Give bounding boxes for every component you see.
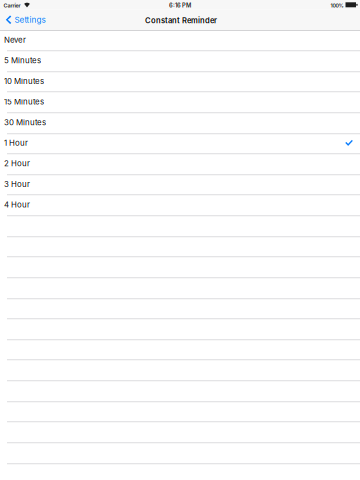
button[interactable]: 30 Minutes — [0, 112, 360, 133]
button[interactable]: Settings — [0, 9, 52, 30]
button[interactable]: 2 Hour — [0, 153, 360, 174]
staticText: Settings — [15, 15, 46, 25]
staticText: 2 Hour — [4, 159, 30, 168]
staticText: 15 Minutes — [4, 97, 44, 106]
staticText: Never — [4, 35, 26, 44]
button[interactable]: 15 Minutes — [0, 91, 360, 112]
button[interactable]: 4 Hour — [0, 194, 360, 215]
staticText: 1 Hour — [4, 138, 28, 148]
staticText: 3 Hour — [4, 179, 30, 189]
button[interactable]: Never — [0, 29, 360, 50]
staticText: 4 Hour — [4, 200, 30, 209]
staticText: 100% — [330, 2, 343, 9]
staticText: 6:16 PM — [169, 2, 191, 9]
staticText: Carrier — [4, 2, 21, 9]
button[interactable]: 10 Minutes — [0, 71, 360, 91]
staticText: 30 Minutes — [4, 117, 46, 127]
button[interactable]: 3 Hour — [0, 174, 360, 194]
staticText: 10 Minutes — [4, 76, 44, 86]
staticText: Constant Reminder — [145, 16, 217, 25]
button[interactable]: 5 Minutes — [0, 50, 360, 71]
button[interactable]: 1 Hour — [0, 133, 360, 153]
staticText: 5 Minutes — [4, 56, 41, 65]
